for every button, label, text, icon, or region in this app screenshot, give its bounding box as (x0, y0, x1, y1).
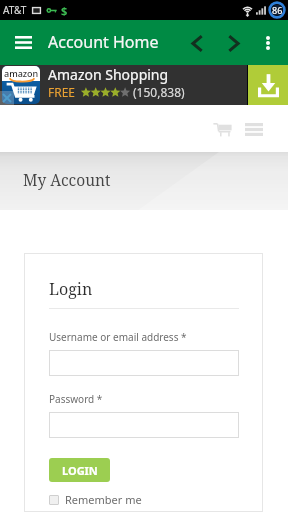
button[interactable]: LOGIN (49, 458, 110, 482)
staticText: Username or email address * (49, 330, 187, 344)
button[interactable]: Forward (217, 27, 249, 59)
staticText: Account Home (48, 31, 159, 53)
staticText: (150,838) (133, 84, 185, 100)
staticText: My Account (23, 169, 111, 190)
staticText: $ (61, 3, 68, 18)
button[interactable]: Shopping cart (210, 117, 234, 141)
button[interactable]: Close ad (0, 91, 14, 105)
staticText: Amazon Shopping (48, 65, 169, 84)
button[interactable]: Install app (248, 65, 288, 105)
button[interactable]: Navigation drawer (8, 27, 39, 58)
staticText: Remember me (65, 492, 142, 507)
staticText: LOGIN (62, 463, 98, 478)
staticText: Login (49, 278, 93, 300)
staticText: 86 (272, 4, 283, 16)
staticText: AT&T (3, 3, 27, 17)
button[interactable]: Back (181, 27, 213, 59)
staticText: amazon (4, 67, 39, 79)
button[interactable]: More options (249, 24, 287, 62)
button[interactable]: Site menu (242, 117, 266, 141)
button[interactable]: Remember me (49, 492, 142, 507)
staticText: FREE (48, 84, 76, 100)
staticText: Password * (49, 392, 103, 406)
